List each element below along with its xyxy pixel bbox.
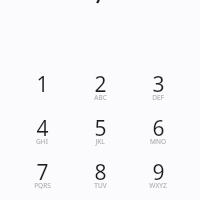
button[interactable]: 5 JKL bbox=[71, 116, 129, 160]
staticText: 1 bbox=[36, 70, 49, 99]
staticText: 2 bbox=[94, 70, 107, 99]
staticText: 3 bbox=[152, 70, 165, 99]
staticText: 7 bbox=[36, 158, 49, 187]
staticText: DEF bbox=[152, 93, 164, 102]
button[interactable]: 6 MNO bbox=[129, 116, 187, 160]
button[interactable]: 1 bbox=[13, 72, 71, 116]
staticText: 9 bbox=[152, 158, 165, 187]
staticText: WXYZ bbox=[149, 181, 167, 190]
button[interactable]: 4 GHI bbox=[13, 116, 71, 160]
staticText: 8 bbox=[94, 158, 107, 187]
staticText: GHI bbox=[36, 137, 48, 146]
staticText: 4 bbox=[36, 114, 49, 143]
button[interactable]: 2 ABC bbox=[71, 72, 129, 116]
button[interactable]: 9 WXYZ bbox=[129, 160, 187, 200]
staticText: 6 bbox=[152, 114, 165, 143]
button[interactable]: 3 DEF bbox=[129, 72, 187, 116]
staticText: JKL bbox=[95, 137, 105, 146]
button[interactable]: 7 PQRS bbox=[13, 160, 71, 200]
staticText: MNO bbox=[150, 137, 166, 146]
staticText: 5 bbox=[94, 114, 107, 143]
staticText: TUV bbox=[94, 181, 107, 190]
button[interactable]: 8 TUV bbox=[71, 160, 129, 200]
staticText: PQRS bbox=[34, 181, 51, 190]
staticText: ABC bbox=[94, 93, 107, 102]
